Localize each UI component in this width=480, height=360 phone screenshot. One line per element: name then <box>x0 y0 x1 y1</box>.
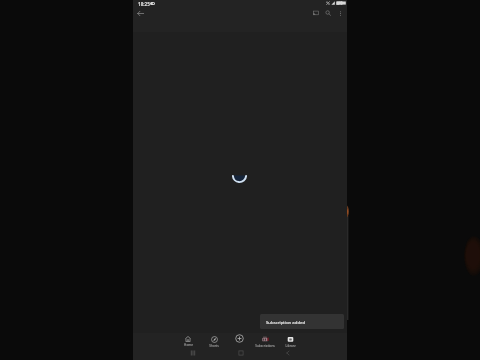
staticText: Subscription added <box>266 319 306 325</box>
button[interactable]: Recents <box>185 347 201 359</box>
button[interactable]: Back <box>280 347 296 359</box>
staticText: Shorts <box>209 344 219 347</box>
button[interactable]: Shorts <box>201 334 227 347</box>
staticText: Subscriptions <box>255 344 275 347</box>
button[interactable]: Home <box>175 334 201 347</box>
staticText: Home <box>184 343 193 347</box>
staticText: Library <box>285 344 296 347</box>
button[interactable]: Back <box>133 6 147 20</box>
button[interactable]: Create <box>226 334 252 347</box>
button[interactable]: Library <box>277 334 303 347</box>
button[interactable]: Subscriptions <box>252 334 278 347</box>
button[interactable]: More options <box>333 6 347 20</box>
button[interactable]: Home <box>233 347 249 359</box>
button[interactable]: Search <box>321 6 335 20</box>
button[interactable]: Subscription added <box>260 314 344 329</box>
staticText: 18:25 <box>138 1 150 7</box>
button[interactable]: Cast <box>309 6 323 20</box>
